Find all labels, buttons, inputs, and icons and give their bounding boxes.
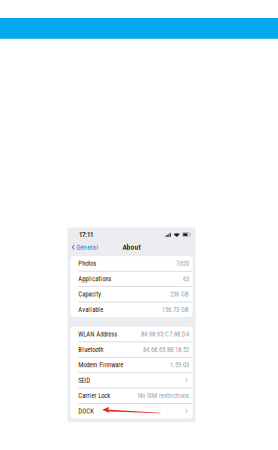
staticText: General — [76, 243, 98, 251]
staticText: 63 — [183, 275, 189, 283]
button[interactable]: DOCK — [70, 404, 193, 418]
button[interactable]: Modem Firmware — [70, 358, 193, 373]
staticText: 1.59.03 — [170, 361, 189, 369]
staticText: Applications — [78, 275, 111, 283]
staticText: SEID — [78, 376, 90, 384]
button[interactable]: Bluetooth — [70, 342, 193, 358]
staticText: No SIM restrictions — [138, 392, 189, 400]
staticText: 256 GB — [170, 290, 189, 298]
staticText: Modem Firmware — [78, 361, 123, 369]
button[interactable]: Applications — [70, 271, 193, 287]
button[interactable]: Capacity — [70, 287, 193, 302]
button[interactable]: Photos — [70, 256, 193, 271]
staticText: 7,620 — [176, 260, 189, 267]
staticText: 84:68:65:C7:88:D4 — [141, 330, 189, 338]
button[interactable]: Carrier Lock — [70, 388, 193, 404]
staticText: Capacity — [78, 290, 101, 298]
staticText: Carrier Lock — [78, 392, 110, 400]
staticText: Bluetooth — [78, 346, 103, 353]
staticText: Photos — [78, 260, 96, 267]
staticText: 17:11 — [79, 230, 93, 239]
staticText: 156.73 GB — [162, 306, 189, 314]
staticText: DOCK — [78, 407, 94, 415]
staticText: 84:68:65:88:18:52 — [143, 346, 189, 353]
staticText: WLAN Address — [78, 330, 117, 338]
button[interactable]: SEID — [70, 373, 193, 388]
staticText: About — [122, 243, 140, 252]
staticText: Available — [78, 306, 103, 314]
button[interactable]: Available — [70, 302, 193, 317]
button[interactable]: General — [67, 241, 98, 253]
button[interactable]: WLAN Address — [70, 327, 193, 342]
